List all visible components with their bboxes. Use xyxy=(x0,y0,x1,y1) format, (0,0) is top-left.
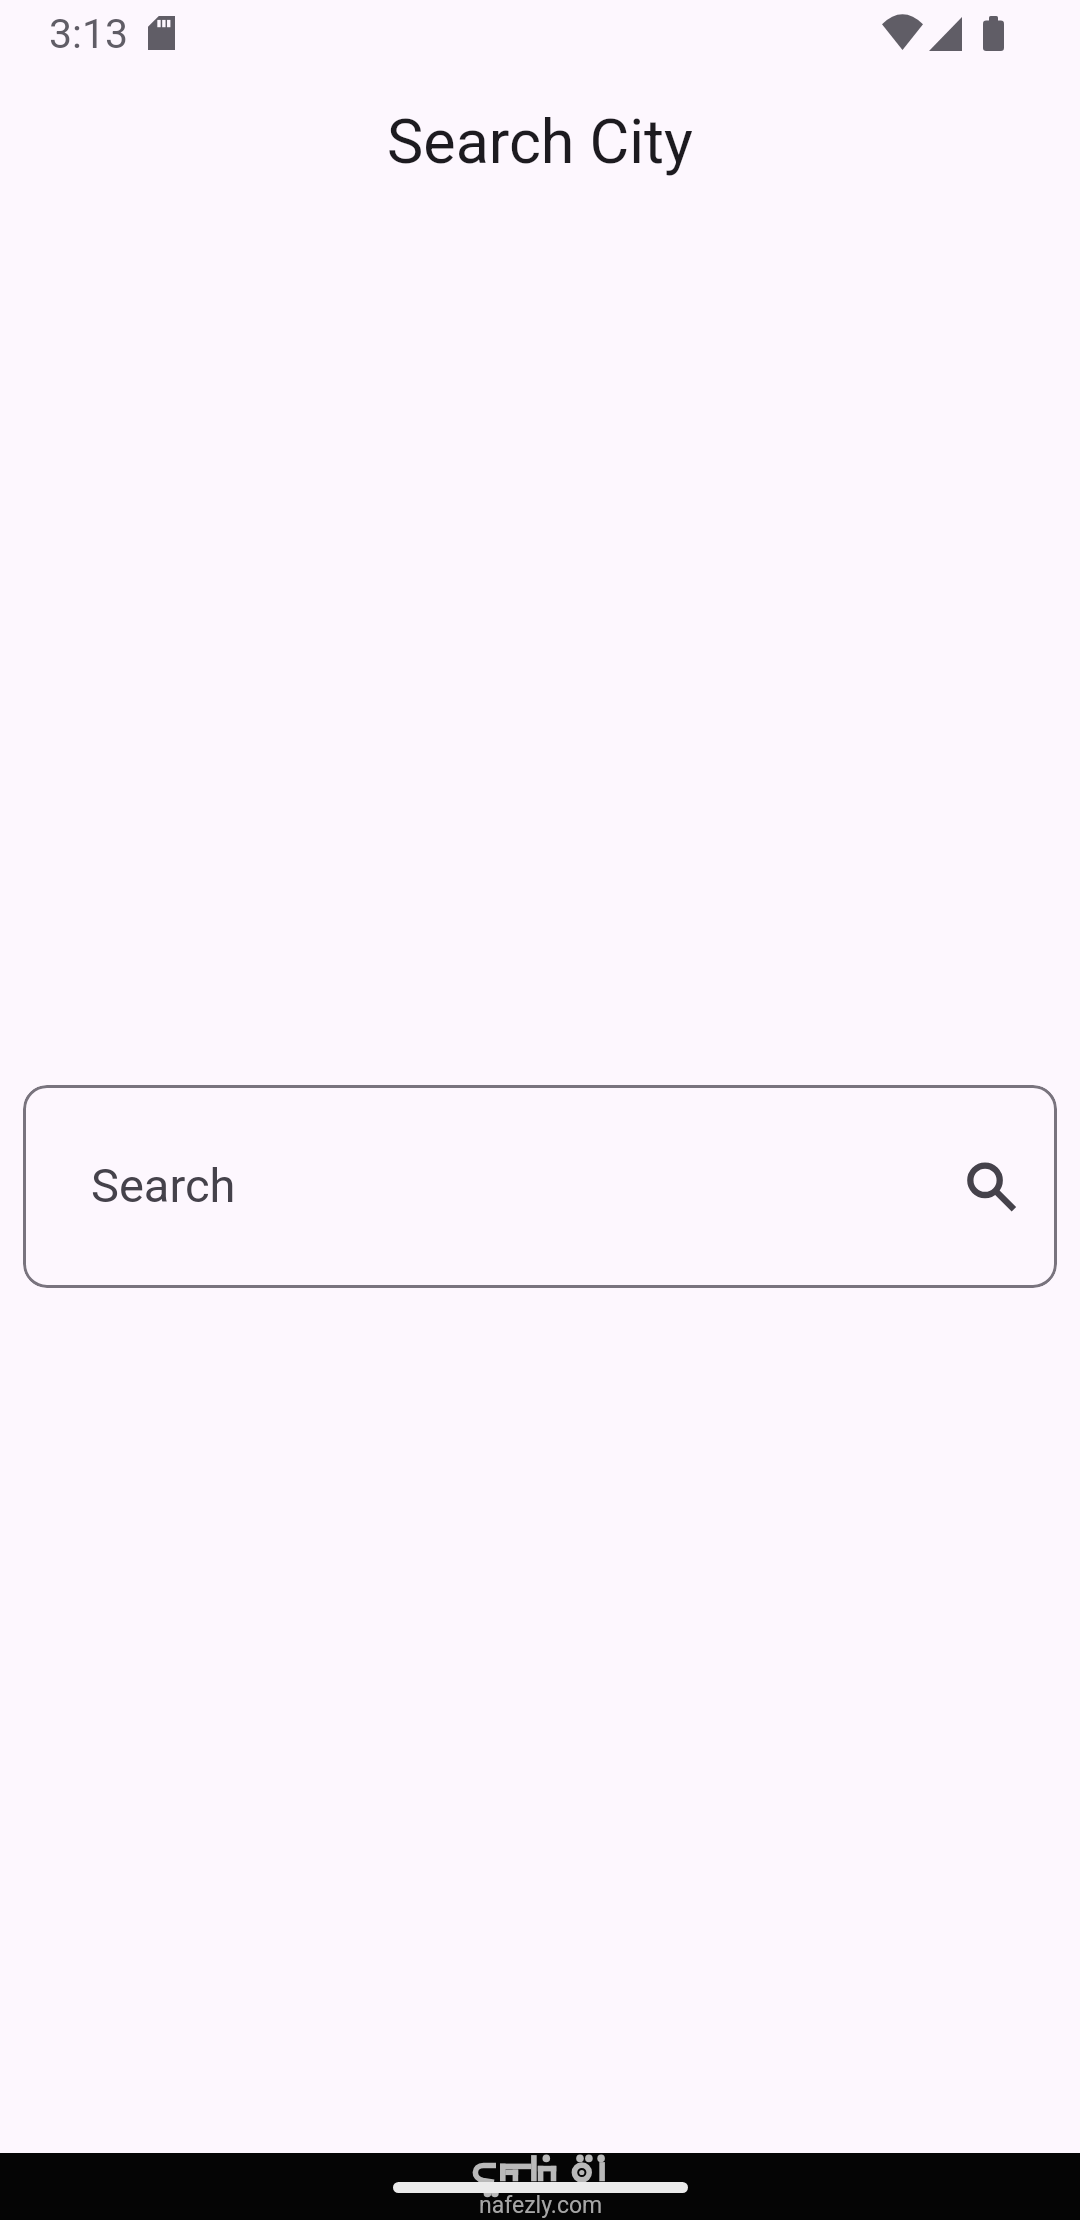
button[interactable]: Home xyxy=(393,2182,688,2193)
staticText: nafezly.com xyxy=(479,2192,603,2219)
staticText: 3:13 xyxy=(49,10,129,58)
button[interactable]: Search xyxy=(23,1085,1057,1288)
button[interactable]: Search xyxy=(957,1147,1037,1227)
staticText: Search City xyxy=(387,106,693,177)
staticText: Search xyxy=(91,1158,236,1213)
